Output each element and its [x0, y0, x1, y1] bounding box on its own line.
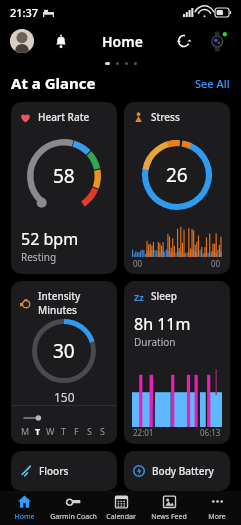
- staticText: Intensity Minutes: [38, 289, 117, 317]
- staticText: Heart Rate: [38, 110, 90, 124]
- button[interactable]: Body Battery: [124, 451, 230, 491]
- staticText: 150: [54, 389, 75, 405]
- button[interactable]: Intensity Minutes: [11, 281, 117, 444]
- staticText: Floors: [39, 464, 69, 478]
- staticText: F: [74, 425, 79, 437]
- button[interactable]: Stress: [124, 102, 230, 274]
- button[interactable]: More: [193, 491, 241, 525]
- staticText: Garmin Coach: [50, 512, 97, 522]
- staticText: See All: [195, 76, 230, 91]
- button[interactable]: Profile: [10, 29, 34, 53]
- button[interactable]: Device: [205, 28, 231, 54]
- button[interactable]: Floors: [11, 451, 117, 491]
- staticText: 52 bpm: [21, 228, 79, 250]
- staticText: S: [87, 425, 92, 437]
- button[interactable]: News Feed: [145, 491, 193, 525]
- staticText: M: [21, 425, 30, 437]
- button[interactable]: Sync: [171, 28, 197, 54]
- staticText: 58: [53, 163, 75, 189]
- staticText: Home: [14, 512, 35, 522]
- staticText: W: [46, 425, 55, 437]
- staticText: 00: [211, 258, 221, 269]
- button[interactable]: Calendar: [97, 491, 145, 525]
- staticText: 22:01: [133, 427, 154, 438]
- staticText: T: [35, 425, 41, 437]
- staticText: Home: [102, 32, 143, 51]
- staticText: Body Battery: [152, 464, 214, 478]
- staticText: T: [61, 425, 67, 437]
- staticText: 21:37: [10, 5, 39, 20]
- staticText: At a Glance: [11, 73, 96, 93]
- staticText: S: [100, 425, 105, 437]
- staticText: Zz: [134, 291, 144, 302]
- button[interactable]: Garmin Coach: [49, 491, 97, 525]
- staticText: 26: [166, 162, 188, 188]
- staticText: News Feed: [151, 512, 187, 522]
- button[interactable]: Heart Rate: [11, 102, 117, 274]
- staticText: Stress: [151, 110, 180, 124]
- staticText: 00: [133, 258, 143, 269]
- button[interactable]: Zz: [124, 281, 230, 444]
- button[interactable]: Notifications: [48, 28, 74, 54]
- staticText: Sleep: [151, 289, 177, 303]
- staticText: More: [208, 512, 226, 522]
- button[interactable]: Home: [0, 491, 49, 525]
- staticText: 30: [53, 338, 75, 364]
- staticText: Duration: [134, 335, 176, 349]
- staticText: Calendar: [106, 512, 136, 522]
- button[interactable]: See All: [195, 76, 230, 91]
- staticText: Resting: [21, 250, 57, 264]
- staticText: 8h 11m: [134, 313, 191, 335]
- staticText: 06:13: [200, 427, 221, 438]
